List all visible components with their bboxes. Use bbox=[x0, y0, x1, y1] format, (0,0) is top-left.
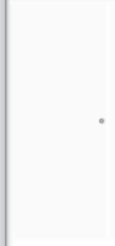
button[interactable]: Appearance bbox=[98, 117, 106, 125]
